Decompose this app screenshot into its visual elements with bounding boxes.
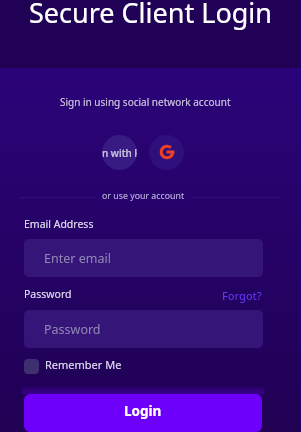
button[interactable] xyxy=(24,359,39,374)
button[interactable]: Enter email xyxy=(24,239,263,277)
button[interactable]: Forgot? xyxy=(222,288,262,303)
staticText: Remember Me xyxy=(45,357,122,372)
staticText: Sign in using social network account xyxy=(60,95,231,109)
staticText: Password xyxy=(44,321,101,338)
staticText: Secure Client Login xyxy=(29,0,272,31)
button[interactable] xyxy=(149,135,184,170)
button[interactable]: Login xyxy=(24,394,262,432)
button[interactable]: n with F xyxy=(102,135,137,170)
staticText: Email Address xyxy=(24,217,94,231)
staticText: Login xyxy=(124,402,162,420)
button[interactable]: Password xyxy=(24,310,263,348)
staticText: or use your account xyxy=(102,190,185,202)
staticText: Enter email xyxy=(44,250,111,267)
staticText: Password xyxy=(24,287,72,301)
staticText: n with F xyxy=(102,146,137,160)
